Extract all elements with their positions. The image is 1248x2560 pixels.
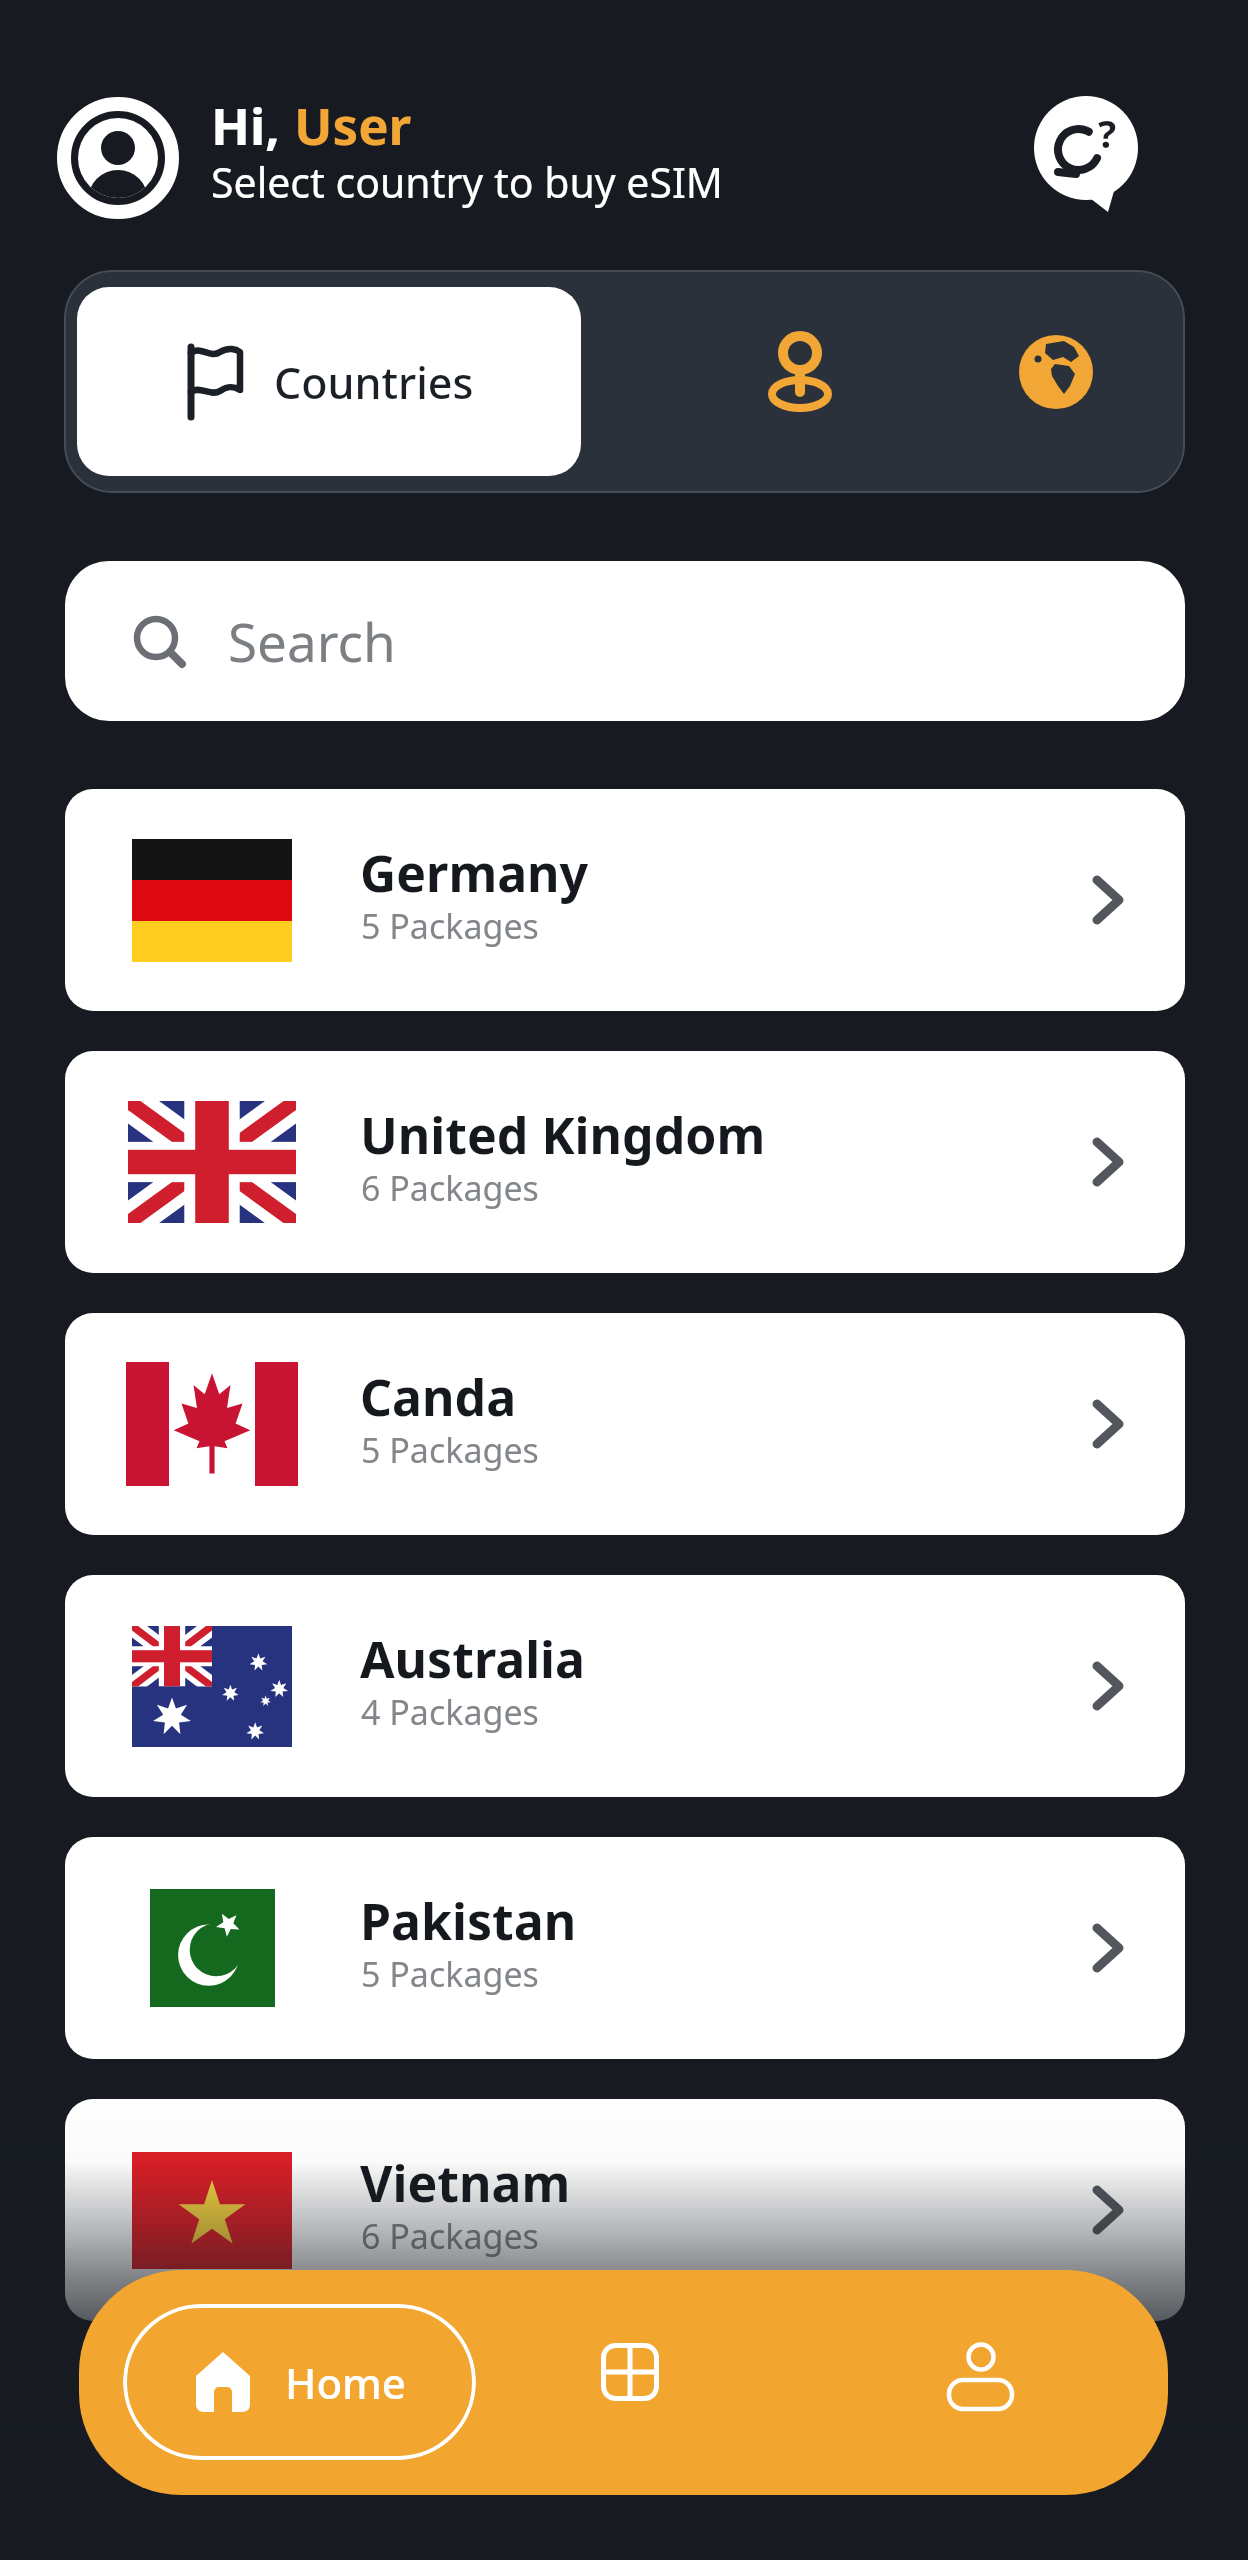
button[interactable]: Vietnam bbox=[65, 2099, 1185, 2321]
staticText: Hi, bbox=[211, 90, 294, 159]
button[interactable] bbox=[57, 97, 179, 219]
button[interactable]: Search bbox=[65, 561, 1185, 721]
staticText: Countries bbox=[274, 353, 474, 412]
button[interactable] bbox=[1018, 334, 1094, 410]
button[interactable]: Australia bbox=[65, 1575, 1185, 1797]
button[interactable] bbox=[601, 2343, 659, 2401]
button[interactable]: Home bbox=[123, 2304, 476, 2460]
staticText: Search bbox=[228, 605, 396, 677]
staticText: 4 Packages bbox=[361, 1689, 539, 1735]
button[interactable]: United Kingdom bbox=[65, 1051, 1185, 1273]
staticText: User bbox=[294, 90, 412, 159]
staticText: Australia bbox=[360, 1625, 585, 1693]
staticText: Vietnam bbox=[360, 2149, 571, 2217]
staticText: Home bbox=[285, 2354, 406, 2411]
staticText: ? bbox=[1098, 107, 1117, 159]
button[interactable]: Countries bbox=[77, 287, 581, 476]
staticText: United Kingdom bbox=[360, 1101, 766, 1169]
button[interactable]: Canda bbox=[65, 1313, 1185, 1535]
staticText: 6 Packages bbox=[361, 2213, 539, 2259]
staticText: 5 Packages bbox=[361, 1427, 539, 1473]
staticText: Pakistan bbox=[360, 1887, 577, 1955]
button[interactable] bbox=[947, 2342, 1013, 2412]
staticText: 5 Packages bbox=[361, 903, 539, 949]
staticText: 5 Packages bbox=[361, 1951, 539, 1997]
staticText: Germany bbox=[360, 839, 589, 907]
staticText: Select country to buy eSIM bbox=[211, 154, 724, 210]
button[interactable] bbox=[770, 330, 830, 414]
button[interactable]: Germany bbox=[65, 789, 1185, 1011]
staticText: Canda bbox=[360, 1363, 517, 1431]
button[interactable]: ? bbox=[1034, 96, 1140, 214]
button[interactable]: Pakistan bbox=[65, 1837, 1185, 2059]
staticText: 6 Packages bbox=[361, 1165, 539, 1211]
